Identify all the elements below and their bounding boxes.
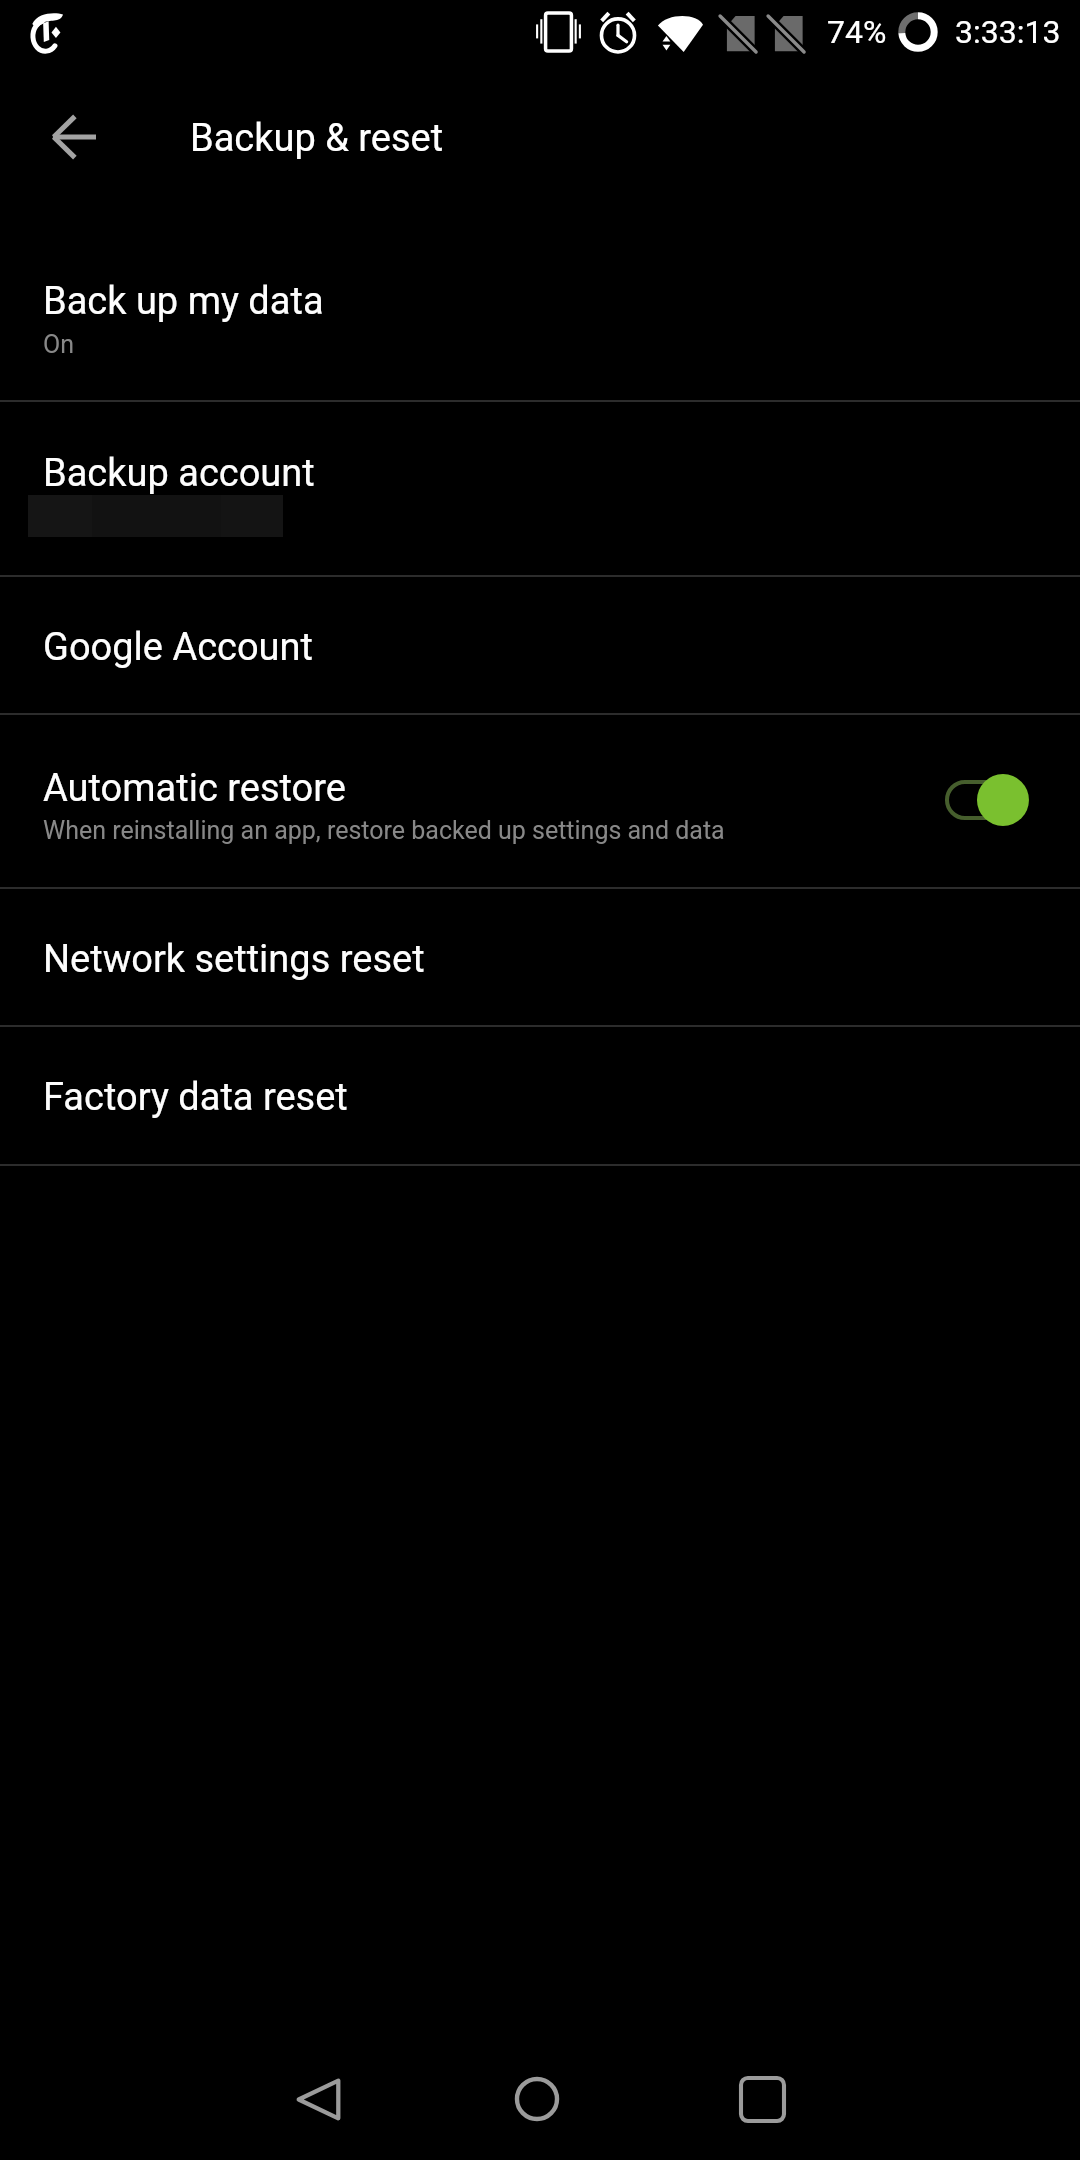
staticText: On — [43, 330, 75, 359]
button[interactable]: Network settings reset — [0, 889, 1080, 1025]
staticText: Backup account — [43, 451, 315, 496]
staticText: 3:33:13 — [955, 13, 1061, 51]
button[interactable]: Recent apps — [707, 2044, 817, 2154]
staticText: Google Account — [43, 625, 313, 670]
button[interactable]: Backup account — [0, 402, 1080, 575]
staticText: When reinstalling an app, restore backed… — [43, 816, 725, 845]
button[interactable]: Navigate up — [22, 85, 126, 189]
button[interactable]: Automatic restore — [942, 772, 1028, 828]
button[interactable]: Factory data reset — [0, 1027, 1080, 1164]
button[interactable]: Back up my data — [0, 230, 1080, 400]
button[interactable]: Home — [482, 2044, 592, 2154]
staticText: Automatic restore — [43, 766, 346, 811]
staticText: 74% — [827, 13, 887, 51]
button[interactable]: Google Account — [0, 577, 1080, 713]
button[interactable]: Automatic restore — [0, 715, 1080, 887]
staticText: Back up my data — [43, 279, 324, 324]
staticText: Factory data reset — [43, 1075, 348, 1120]
staticText: Network settings reset — [43, 937, 425, 982]
staticText: Backup & reset — [190, 116, 444, 161]
button[interactable]: Back — [263, 2044, 373, 2154]
